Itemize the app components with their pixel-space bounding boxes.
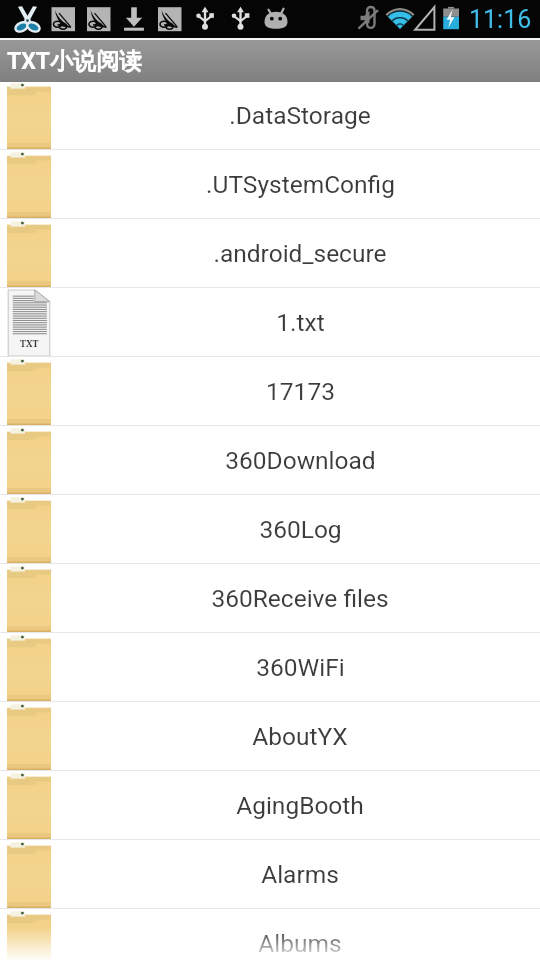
staticText: 360WiFi [256,653,345,682]
staticText: 360Receive files [211,584,389,613]
button[interactable]: 360WiFi [0,633,540,702]
button[interactable]: .DataStorage [0,81,540,150]
button[interactable]: TXT小说阅读 [0,40,540,82]
staticText: .android_secure [213,239,387,268]
staticText: .UTSystemConfig [206,170,395,199]
staticText: Albums [258,929,342,958]
button[interactable]: 360Log [0,495,540,564]
staticText: 360Download [225,446,376,475]
button[interactable]: 17173 [0,357,540,426]
button[interactable]: .android_secure [0,219,540,288]
staticText: 360Log [259,515,342,544]
button[interactable]: 360Receive files [0,564,540,633]
staticText: 1.txt [276,308,325,337]
staticText: 11:16 [469,5,532,34]
button[interactable]: 360Download [0,426,540,495]
staticText: TXT小说阅读 [7,47,143,76]
button[interactable]: .UTSystemConfig [0,150,540,219]
button[interactable]: Albums [0,909,540,960]
staticText: 17173 [266,377,335,406]
button[interactable]: TXT [0,288,540,357]
staticText: Alarms [261,860,339,889]
button[interactable]: AboutYX [0,702,540,771]
staticText: TXT [20,337,39,349]
button[interactable]: AgingBooth [0,771,540,840]
staticText: .DataStorage [229,101,371,130]
staticText: AboutYX [252,722,348,751]
staticText: AgingBooth [236,791,364,820]
button[interactable]: Alarms [0,840,540,909]
